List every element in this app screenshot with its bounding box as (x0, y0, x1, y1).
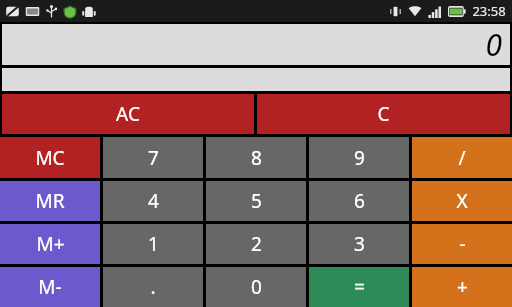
button[interactable]: = (309, 267, 409, 307)
staticText: 0 (485, 24, 502, 65)
button[interactable]: AC (2, 94, 254, 134)
button[interactable]: . (103, 267, 203, 307)
staticText: 8 (251, 145, 262, 171)
button[interactable]: 4 (103, 181, 203, 221)
staticText: . (150, 274, 156, 300)
button[interactable]: 7 (103, 137, 203, 178)
button[interactable]: - (412, 224, 512, 264)
staticText: MR (35, 188, 65, 214)
staticText: M- (38, 274, 62, 300)
staticText: 4 (148, 188, 159, 214)
button[interactable]: 2 (206, 224, 306, 264)
staticText: + (457, 274, 468, 300)
staticText: 6 (354, 188, 365, 214)
button[interactable]: MR (0, 181, 100, 221)
staticText: 9 (354, 145, 365, 171)
button[interactable]: 5 (206, 181, 306, 221)
button[interactable]: 9 (309, 137, 409, 178)
button[interactable]: 0 (2, 24, 510, 65)
staticText: M+ (36, 231, 65, 257)
staticText: - (459, 231, 466, 257)
button[interactable]: 8 (206, 137, 306, 178)
staticText: 3 (354, 231, 365, 257)
staticText: / (458, 145, 466, 171)
button[interactable]: MC (0, 137, 100, 178)
button[interactable]: C (257, 94, 510, 134)
staticText: AC (116, 101, 140, 127)
button[interactable]: 6 (309, 181, 409, 221)
staticText: 23:58 (472, 2, 506, 20)
button[interactable]: X (412, 181, 512, 221)
staticText: MC (35, 145, 65, 171)
button[interactable]: 1 (103, 224, 203, 264)
staticText: 2 (251, 231, 262, 257)
staticText: C (377, 101, 390, 127)
button[interactable]: / (412, 137, 512, 178)
staticText: 0 (251, 274, 262, 300)
staticText: 1 (148, 231, 159, 257)
button[interactable]: 3 (309, 224, 409, 264)
button[interactable]: 0 (206, 267, 306, 307)
staticText: 7 (148, 145, 159, 171)
staticText: 5 (251, 188, 262, 214)
button[interactable]: M+ (0, 224, 100, 264)
button[interactable]: + (412, 267, 512, 307)
staticText: = (354, 274, 365, 300)
button[interactable]: M- (0, 267, 100, 307)
staticText: X (456, 188, 468, 214)
